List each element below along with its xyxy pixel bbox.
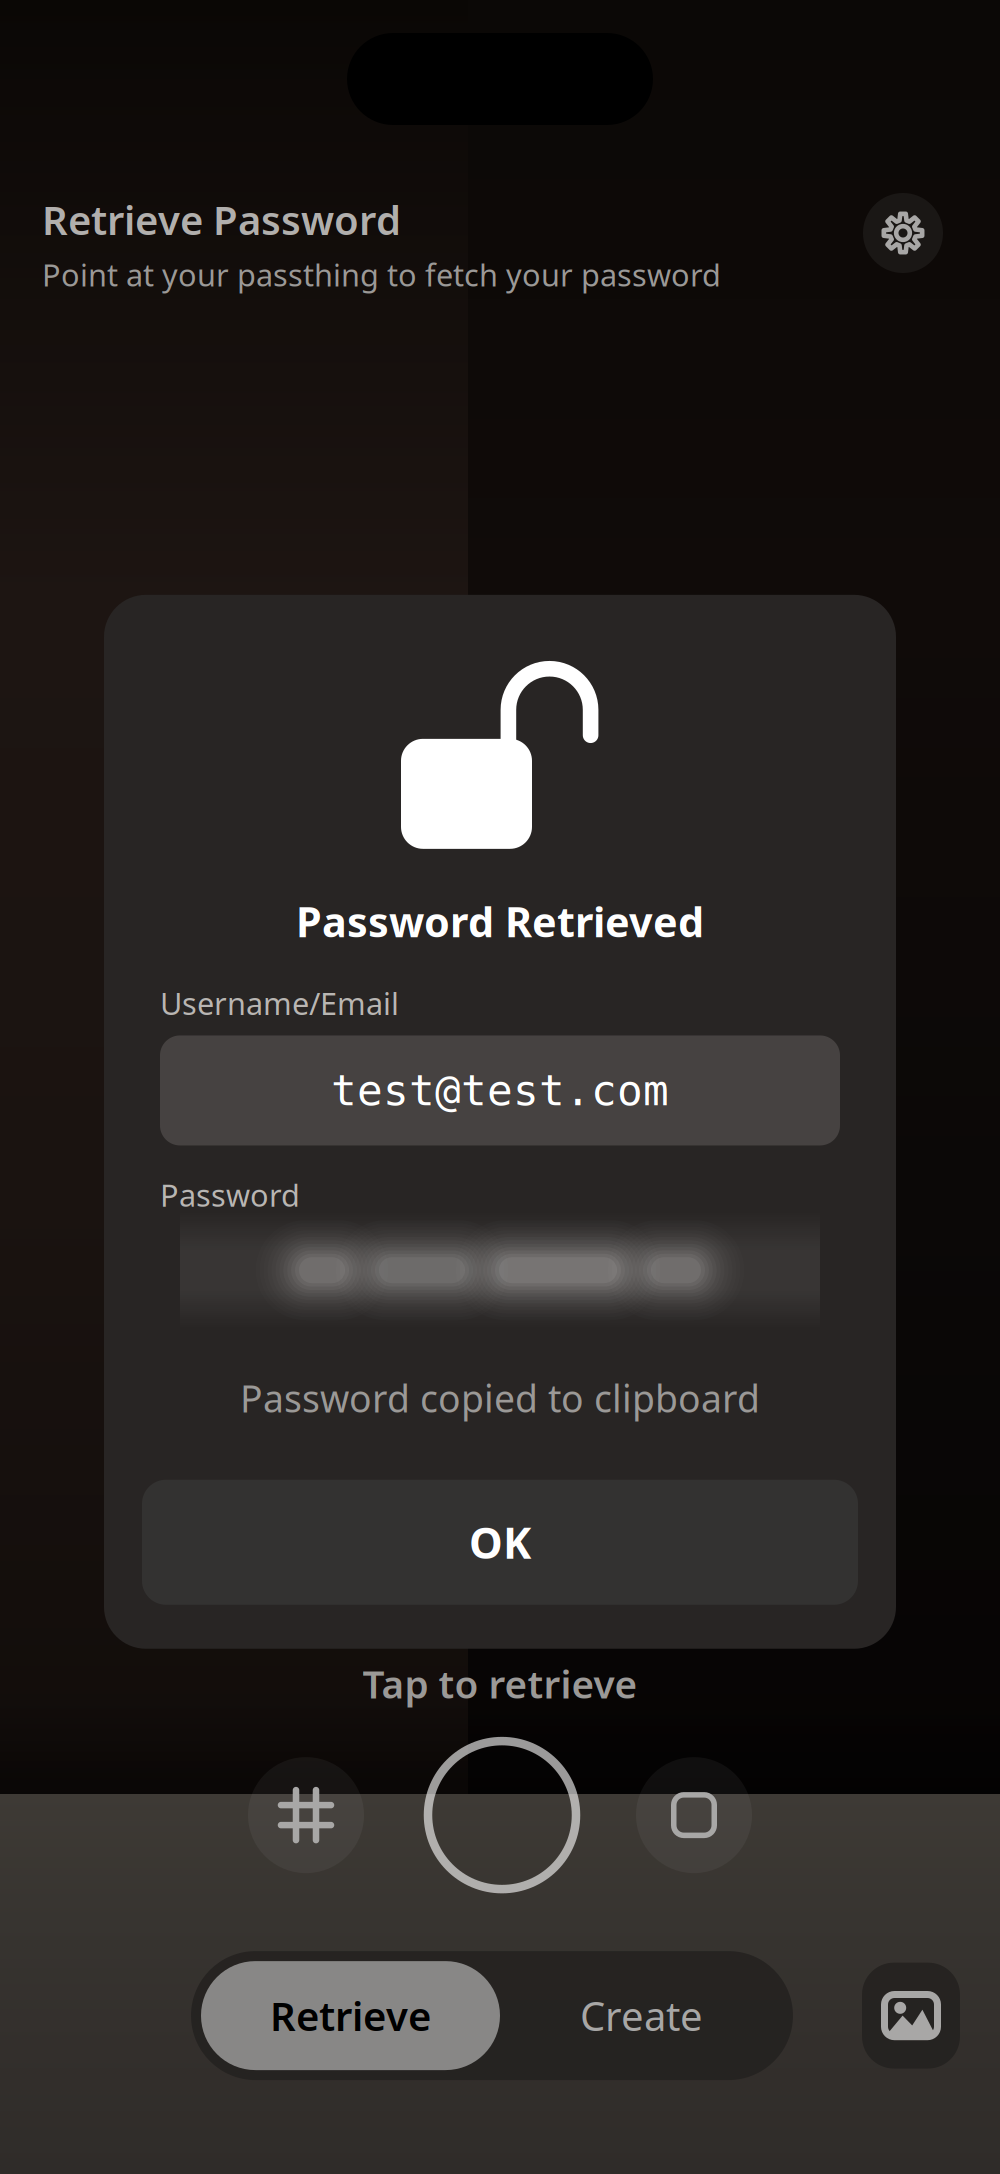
button[interactable]: OK (142, 1480, 858, 1605)
staticText: Create (580, 1989, 703, 2042)
button[interactable]: Photo library (862, 1963, 960, 2069)
staticText: Password Retrieved (296, 894, 704, 949)
button[interactable]: Retrieve (201, 1961, 500, 2070)
staticText: Retrieve (270, 1989, 431, 2042)
button[interactable]: Create (500, 1961, 783, 2070)
staticText: Point at your passthing to fetch your pa… (42, 254, 721, 295)
button[interactable]: Grid overlay (248, 1757, 364, 1873)
staticText: test@test.com (331, 1066, 669, 1115)
staticText: OK (469, 1514, 531, 1571)
staticText: Password copied to clipboard (240, 1373, 760, 1423)
button[interactable]: Settings (863, 193, 943, 273)
staticText: Username/Email (160, 983, 399, 1023)
staticText: Tap to retrieve (362, 1658, 637, 1709)
staticText: Password (160, 1174, 300, 1215)
staticText: Retrieve Password (42, 193, 401, 246)
button[interactable]: Frame guide (636, 1757, 752, 1873)
button[interactable]: Scan (428, 1741, 576, 1889)
